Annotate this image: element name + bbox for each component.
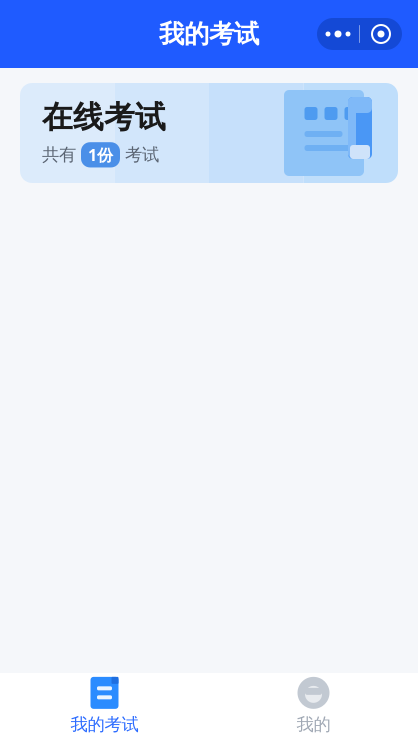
staticText: 我的考试 (70, 714, 138, 735)
button[interactable]: More (317, 18, 359, 50)
button[interactable]: 在线考试 (20, 83, 398, 183)
staticText: 1份 (88, 144, 113, 165)
staticText: 在线考试 (42, 98, 166, 136)
button[interactable]: 我的考试 (0, 669, 209, 739)
staticText: 我的考试 (159, 18, 259, 49)
staticText: 考试 (125, 144, 159, 165)
button[interactable]: 我的 (209, 669, 418, 739)
button[interactable]: Target (360, 18, 402, 50)
staticText: 共有 (42, 144, 76, 165)
staticText: 我的 (296, 714, 330, 735)
